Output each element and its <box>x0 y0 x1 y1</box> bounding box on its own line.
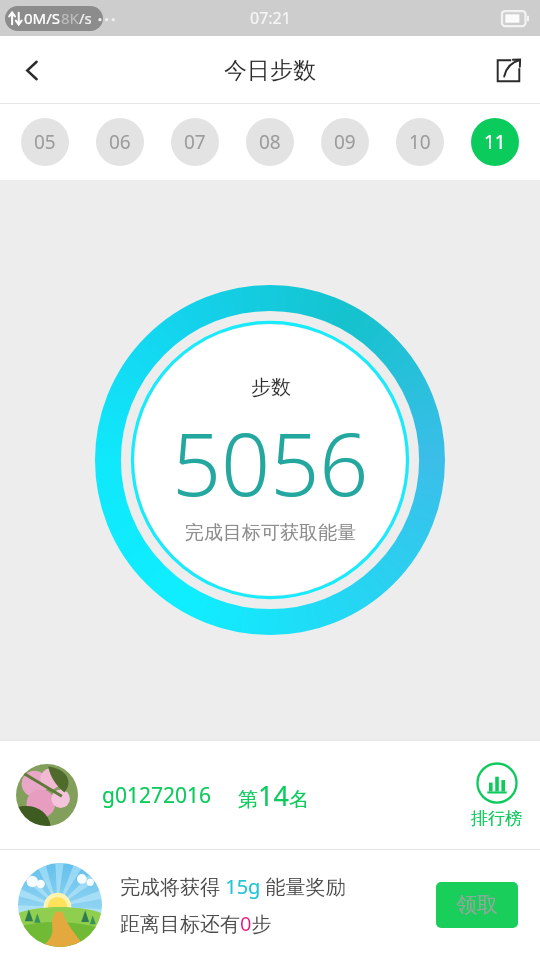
staticText: 完成将获得 15g 能量奖励 <box>120 873 346 900</box>
staticText: 步数 <box>251 375 291 400</box>
staticText: 第14名 <box>238 777 309 814</box>
staticText: 今日步数 <box>224 56 316 85</box>
staticText: 完成目标可获取能量 <box>185 521 356 545</box>
button[interactable]: Back <box>0 36 64 104</box>
button[interactable]: 08 <box>232 104 307 180</box>
staticText: 09 <box>334 129 356 155</box>
staticText: 5056 <box>172 404 369 521</box>
button[interactable]: 领取 <box>436 882 518 928</box>
button[interactable]: 09 <box>307 104 382 180</box>
staticText: 07 <box>184 129 206 155</box>
button[interactable]: 06 <box>82 104 157 180</box>
button[interactable]: 11 <box>457 104 532 180</box>
button[interactable]: g01272016 <box>0 740 540 850</box>
staticText: g01272016 <box>102 781 212 810</box>
button[interactable]: 05 <box>8 104 82 180</box>
staticText: 08 <box>259 129 281 155</box>
button[interactable]: Share <box>476 36 540 104</box>
staticText: 排行榜 <box>471 808 522 829</box>
staticText: 06 <box>109 129 131 155</box>
staticText: 05 <box>34 129 56 155</box>
staticText: /s <box>79 8 92 28</box>
staticText: 距离目标还有0步 <box>120 910 272 937</box>
staticText: 8K <box>61 8 79 28</box>
button[interactable]: 10 <box>382 104 457 180</box>
staticText: 领取 <box>456 892 498 918</box>
button[interactable]: 07 <box>157 104 232 180</box>
staticText: 07:21 <box>250 7 291 29</box>
staticText: 11 <box>484 129 506 155</box>
button[interactable]: 排行榜 <box>471 762 522 829</box>
staticText: 0M/S <box>24 8 61 28</box>
staticText: 10 <box>409 129 431 155</box>
